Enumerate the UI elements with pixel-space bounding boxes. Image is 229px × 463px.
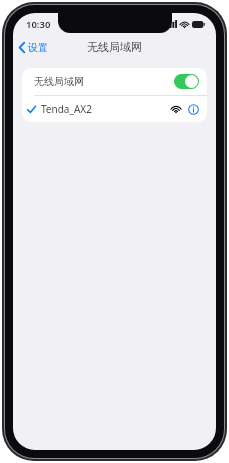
staticText: 无线局域网 xyxy=(34,75,84,88)
button[interactable]: More info about Tenda_AX2 xyxy=(187,103,200,116)
staticText: Tenda_AX2 xyxy=(41,102,92,116)
staticText: 无线局域网 xyxy=(87,40,142,54)
button[interactable]: 无线局域网 xyxy=(22,68,207,95)
other: Wi-Fi signal xyxy=(180,21,189,28)
button[interactable]: Tenda_AX2 xyxy=(22,96,207,122)
button[interactable]: 设置 xyxy=(13,38,54,57)
other: Battery xyxy=(192,21,205,28)
other: Wi-Fi signal xyxy=(171,105,181,113)
other: Cellular signal xyxy=(167,20,177,28)
button[interactable]: Wi-Fi on xyxy=(174,74,199,89)
staticText: 设置 xyxy=(28,41,48,54)
staticText: 10:30 xyxy=(26,18,51,31)
